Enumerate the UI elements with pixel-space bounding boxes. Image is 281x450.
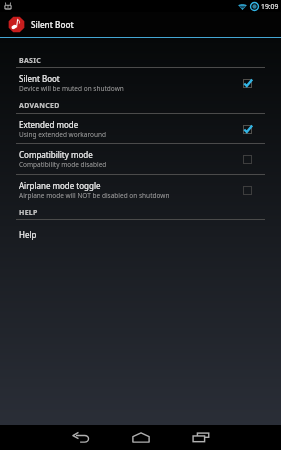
button[interactable]: Silent Boot <box>0 68 281 97</box>
button[interactable]: Toggle <box>239 182 255 198</box>
button[interactable]: Toggle <box>239 151 255 167</box>
staticText: Compatibility mode disabled <box>19 160 107 169</box>
staticText: Help <box>19 229 37 240</box>
staticText: BASIC <box>19 56 42 66</box>
button[interactable]: Back <box>70 425 92 450</box>
staticText: HELP <box>19 208 38 218</box>
staticText: 19:09 <box>261 2 279 11</box>
staticText: Using extended workaround <box>19 130 106 139</box>
button[interactable]: Home <box>130 425 152 450</box>
staticText: Silent Boot <box>19 73 60 84</box>
button[interactable]: Help <box>0 220 281 249</box>
staticText: Silent Boot <box>31 19 74 30</box>
staticText: Extended mode <box>19 119 79 130</box>
button[interactable]: Compatibility mode <box>0 144 281 173</box>
staticText: Compatibility mode <box>19 149 93 160</box>
staticText: Airplane mode toggle <box>19 180 101 191</box>
button[interactable]: Toggle <box>239 75 255 91</box>
button[interactable]: Extended mode <box>0 114 281 143</box>
staticText: Airplane mode will NOT be disabled on sh… <box>19 191 170 200</box>
staticText: ADVANCED <box>19 101 60 111</box>
button[interactable]: Recent apps <box>190 425 212 450</box>
button[interactable]: Toggle <box>239 121 255 137</box>
button[interactable]: Airplane mode toggle <box>0 175 281 204</box>
staticText: Device will be muted on shutdown <box>19 84 124 93</box>
